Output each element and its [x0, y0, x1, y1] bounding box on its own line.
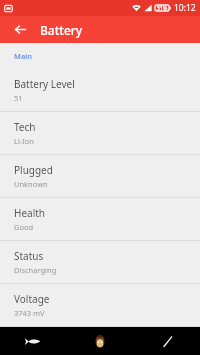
staticText: 10:12: [174, 2, 196, 14]
staticText: Main: [14, 51, 32, 61]
staticText: Status: [14, 249, 44, 263]
button[interactable]: Health: [0, 198, 200, 240]
staticText: Plugged: [14, 163, 53, 177]
staticText: Voltage: [14, 292, 50, 306]
button[interactable]: Recents: [133, 327, 200, 355]
staticText: Tech: [14, 120, 36, 134]
button[interactable]: Home: [66, 327, 133, 355]
staticText: 51%: [157, 5, 168, 12]
staticText: 51: [14, 93, 23, 103]
button[interactable]: Plugged: [0, 155, 200, 197]
staticText: Discharging: [14, 265, 57, 275]
button[interactable]: Back: [0, 16, 40, 43]
button[interactable]: Status: [0, 241, 200, 283]
staticText: Battery: [40, 22, 83, 38]
button[interactable]: Tech: [0, 112, 200, 154]
button[interactable]: Back: [0, 327, 66, 355]
staticText: Health: [14, 206, 46, 220]
staticText: Unknown: [14, 179, 48, 189]
staticText: 3743 mV: [14, 308, 45, 318]
staticText: Battery Level: [14, 77, 75, 91]
button[interactable]: Voltage: [0, 284, 200, 326]
staticText: Good: [14, 222, 34, 232]
staticText: Li-Ion: [14, 136, 34, 146]
button[interactable]: Battery Level: [0, 69, 200, 111]
